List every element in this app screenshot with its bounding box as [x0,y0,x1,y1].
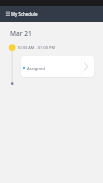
staticText: Assigned [27,66,45,72]
staticText: 10:00 AM - 01:00 PM [17,45,56,50]
staticText: My Schedule [11,11,38,17]
staticText: Mar 21 [10,29,32,38]
button[interactable]: Menu [3,9,13,19]
button[interactable]: Assigned [21,56,94,77]
